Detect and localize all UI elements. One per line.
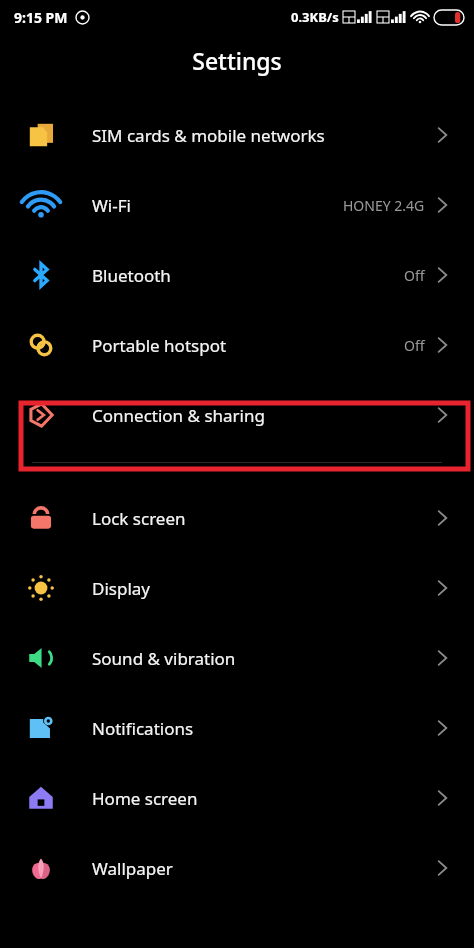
- button[interactable]: Home screen: [0, 763, 474, 833]
- staticText: Off: [404, 266, 425, 285]
- button[interactable]: Bluetooth: [0, 240, 474, 310]
- button[interactable]: Notifications: [0, 693, 474, 763]
- staticText: Wi-Fi: [92, 194, 131, 217]
- staticText: 0.3KB/s: [291, 8, 339, 26]
- staticText: Off: [404, 336, 425, 355]
- staticText: Wallpaper: [92, 857, 173, 880]
- button[interactable]: Wallpaper: [0, 833, 474, 903]
- button[interactable]: Wi-Fi: [0, 170, 474, 240]
- button[interactable]: Portable hotspot: [0, 310, 474, 380]
- staticText: HONEY 2.4G: [343, 196, 425, 215]
- staticText: Sound & vibration: [92, 647, 236, 670]
- button[interactable]: Lock screen: [0, 483, 474, 553]
- button[interactable]: Display: [0, 553, 474, 623]
- button[interactable]: Connection & sharing: [0, 380, 474, 450]
- button[interactable]: Sound & vibration: [0, 623, 474, 693]
- staticText: Portable hotspot: [92, 334, 227, 357]
- staticText: Notifications: [92, 717, 194, 740]
- staticText: 9:15 PM: [14, 8, 68, 27]
- button[interactable]: SIM cards & mobile networks: [0, 100, 474, 170]
- staticText: Display: [92, 577, 150, 600]
- staticText: Lock screen: [92, 507, 186, 530]
- staticText: Settings: [192, 45, 282, 76]
- staticText: Home screen: [92, 787, 198, 810]
- staticText: Bluetooth: [92, 264, 171, 287]
- staticText: SIM cards & mobile networks: [92, 124, 325, 147]
- staticText: Connection & sharing: [92, 404, 265, 427]
